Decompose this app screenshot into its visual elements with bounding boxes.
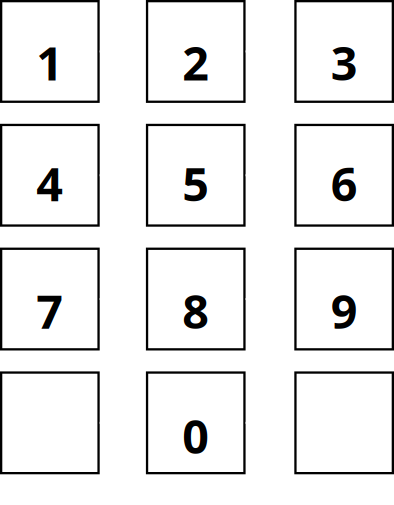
staticText: 8 xyxy=(182,280,209,342)
button[interactable]: 4 xyxy=(0,124,100,227)
staticText: 3 xyxy=(331,31,358,93)
button[interactable] xyxy=(0,371,100,474)
button[interactable]: 3 xyxy=(294,0,394,103)
button[interactable]: 2 xyxy=(146,0,246,103)
button[interactable]: 8 xyxy=(146,248,246,350)
button[interactable]: 9 xyxy=(294,248,394,350)
button[interactable]: 7 xyxy=(0,248,100,350)
staticText: 1 xyxy=(36,31,63,93)
button[interactable]: 0 xyxy=(146,371,246,474)
staticText: 0 xyxy=(182,405,209,467)
staticText: 9 xyxy=(331,280,358,342)
staticText: 2 xyxy=(182,31,209,93)
button[interactable] xyxy=(294,371,394,474)
staticText: 5 xyxy=(182,152,209,214)
staticText: 6 xyxy=(331,152,358,214)
staticText: 7 xyxy=(36,280,63,342)
staticText: 4 xyxy=(36,152,63,214)
button[interactable]: 5 xyxy=(146,124,246,227)
button[interactable]: 1 xyxy=(0,0,100,103)
button[interactable]: 6 xyxy=(294,124,394,227)
